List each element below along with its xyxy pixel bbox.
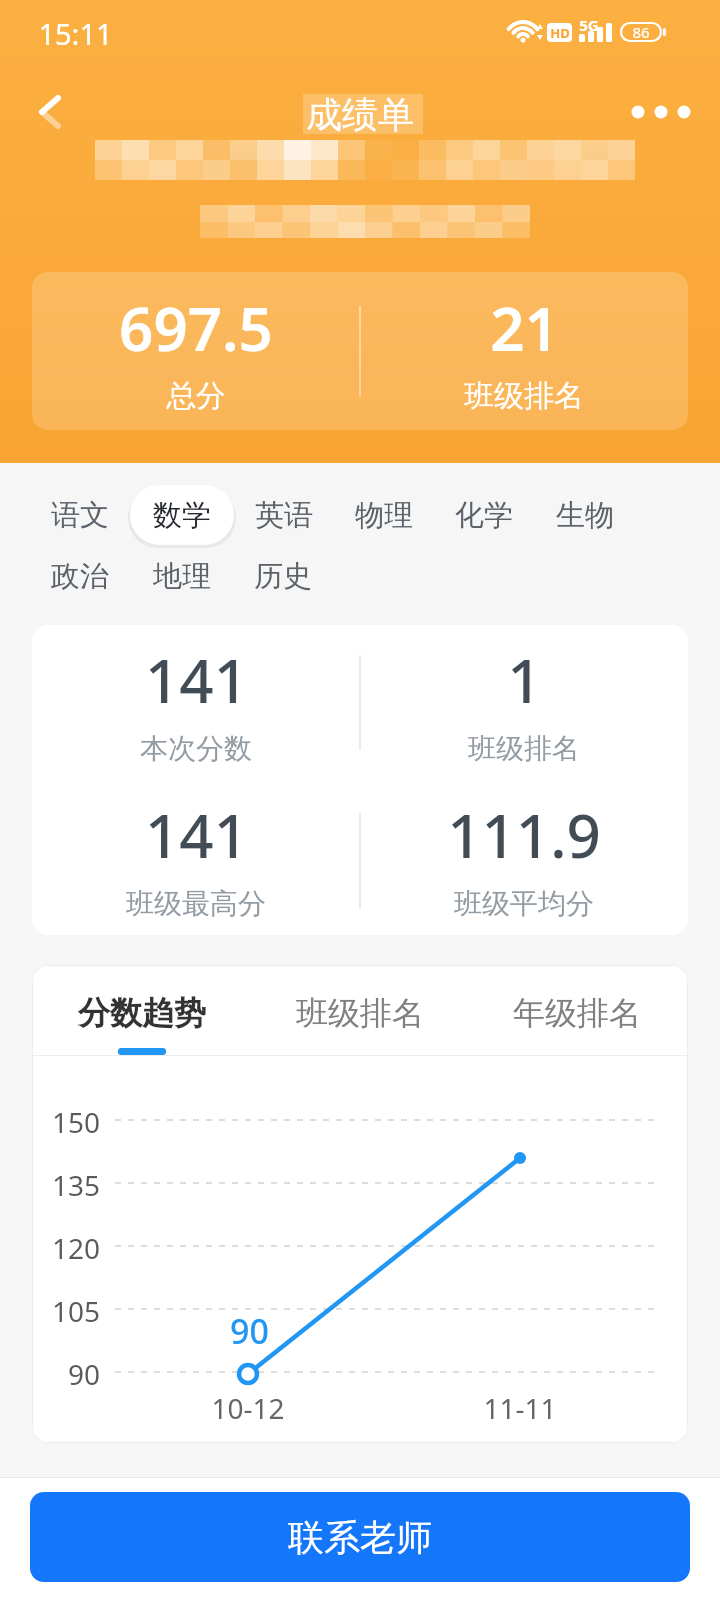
button[interactable] <box>24 86 76 138</box>
staticText: 10-12 <box>211 1389 285 1427</box>
staticText: 语文 <box>51 497 109 534</box>
staticText: 英语 <box>255 497 313 534</box>
staticText: 141 <box>145 794 248 876</box>
button[interactable]: 数学 <box>130 485 234 545</box>
button[interactable]: 生物 <box>533 485 637 545</box>
staticText: 地理 <box>153 558 211 595</box>
button[interactable]: 地理 <box>130 546 234 606</box>
staticText: 本次分数 <box>140 731 252 766</box>
button[interactable]: 化学 <box>432 485 536 545</box>
staticText: 历史 <box>254 558 312 595</box>
staticText: 15:11 <box>38 14 113 53</box>
staticText: 联系老师 <box>288 1515 432 1560</box>
staticText: 697.5 <box>119 287 273 369</box>
staticText: 班级平均分 <box>454 886 594 921</box>
button[interactable] <box>626 86 696 138</box>
staticText: 90 <box>67 1355 100 1389</box>
button[interactable]: 物理 <box>332 485 436 545</box>
staticText: 班级排名 <box>296 993 424 1033</box>
staticText: 141 <box>145 639 248 721</box>
staticText: 150 <box>51 1103 100 1137</box>
staticText: 政治 <box>51 558 109 595</box>
staticText: 5G <box>579 15 599 35</box>
button[interactable]: 联系老师 <box>30 1492 690 1582</box>
staticText: 1 <box>507 639 542 721</box>
staticText: 86 <box>632 22 650 42</box>
staticText: 年级排名 <box>513 993 641 1033</box>
staticText: 105 <box>51 1292 100 1326</box>
staticText: 数学 <box>153 497 211 534</box>
button[interactable]: 英语 <box>232 485 336 545</box>
staticText: 班级排名 <box>468 731 580 766</box>
staticText: 物理 <box>355 497 413 534</box>
button[interactable]: 年级排名 <box>502 980 652 1046</box>
staticText: 11-11 <box>483 1389 557 1427</box>
staticText: HD <box>550 24 570 42</box>
staticText: 化学 <box>455 497 513 534</box>
staticText: 111.9 <box>447 794 601 876</box>
button[interactable]: 班级排名 <box>285 980 435 1046</box>
staticText: 120 <box>51 1229 100 1263</box>
staticText: 分数趋势 <box>78 993 206 1033</box>
staticText: 成绩单 <box>306 92 414 137</box>
staticText: 生物 <box>556 497 614 534</box>
staticText: 班级排名 <box>464 377 584 415</box>
staticText: 总分 <box>166 377 226 415</box>
button[interactable]: 政治 <box>28 546 132 606</box>
button[interactable]: 分数趋势 <box>67 980 217 1046</box>
staticText: 班级最高分 <box>126 886 266 921</box>
staticText: 135 <box>51 1166 100 1200</box>
button[interactable]: 历史 <box>231 546 335 606</box>
staticText: 90 <box>230 1308 269 1354</box>
staticText: 21 <box>490 287 559 369</box>
button[interactable]: 语文 <box>28 485 132 545</box>
